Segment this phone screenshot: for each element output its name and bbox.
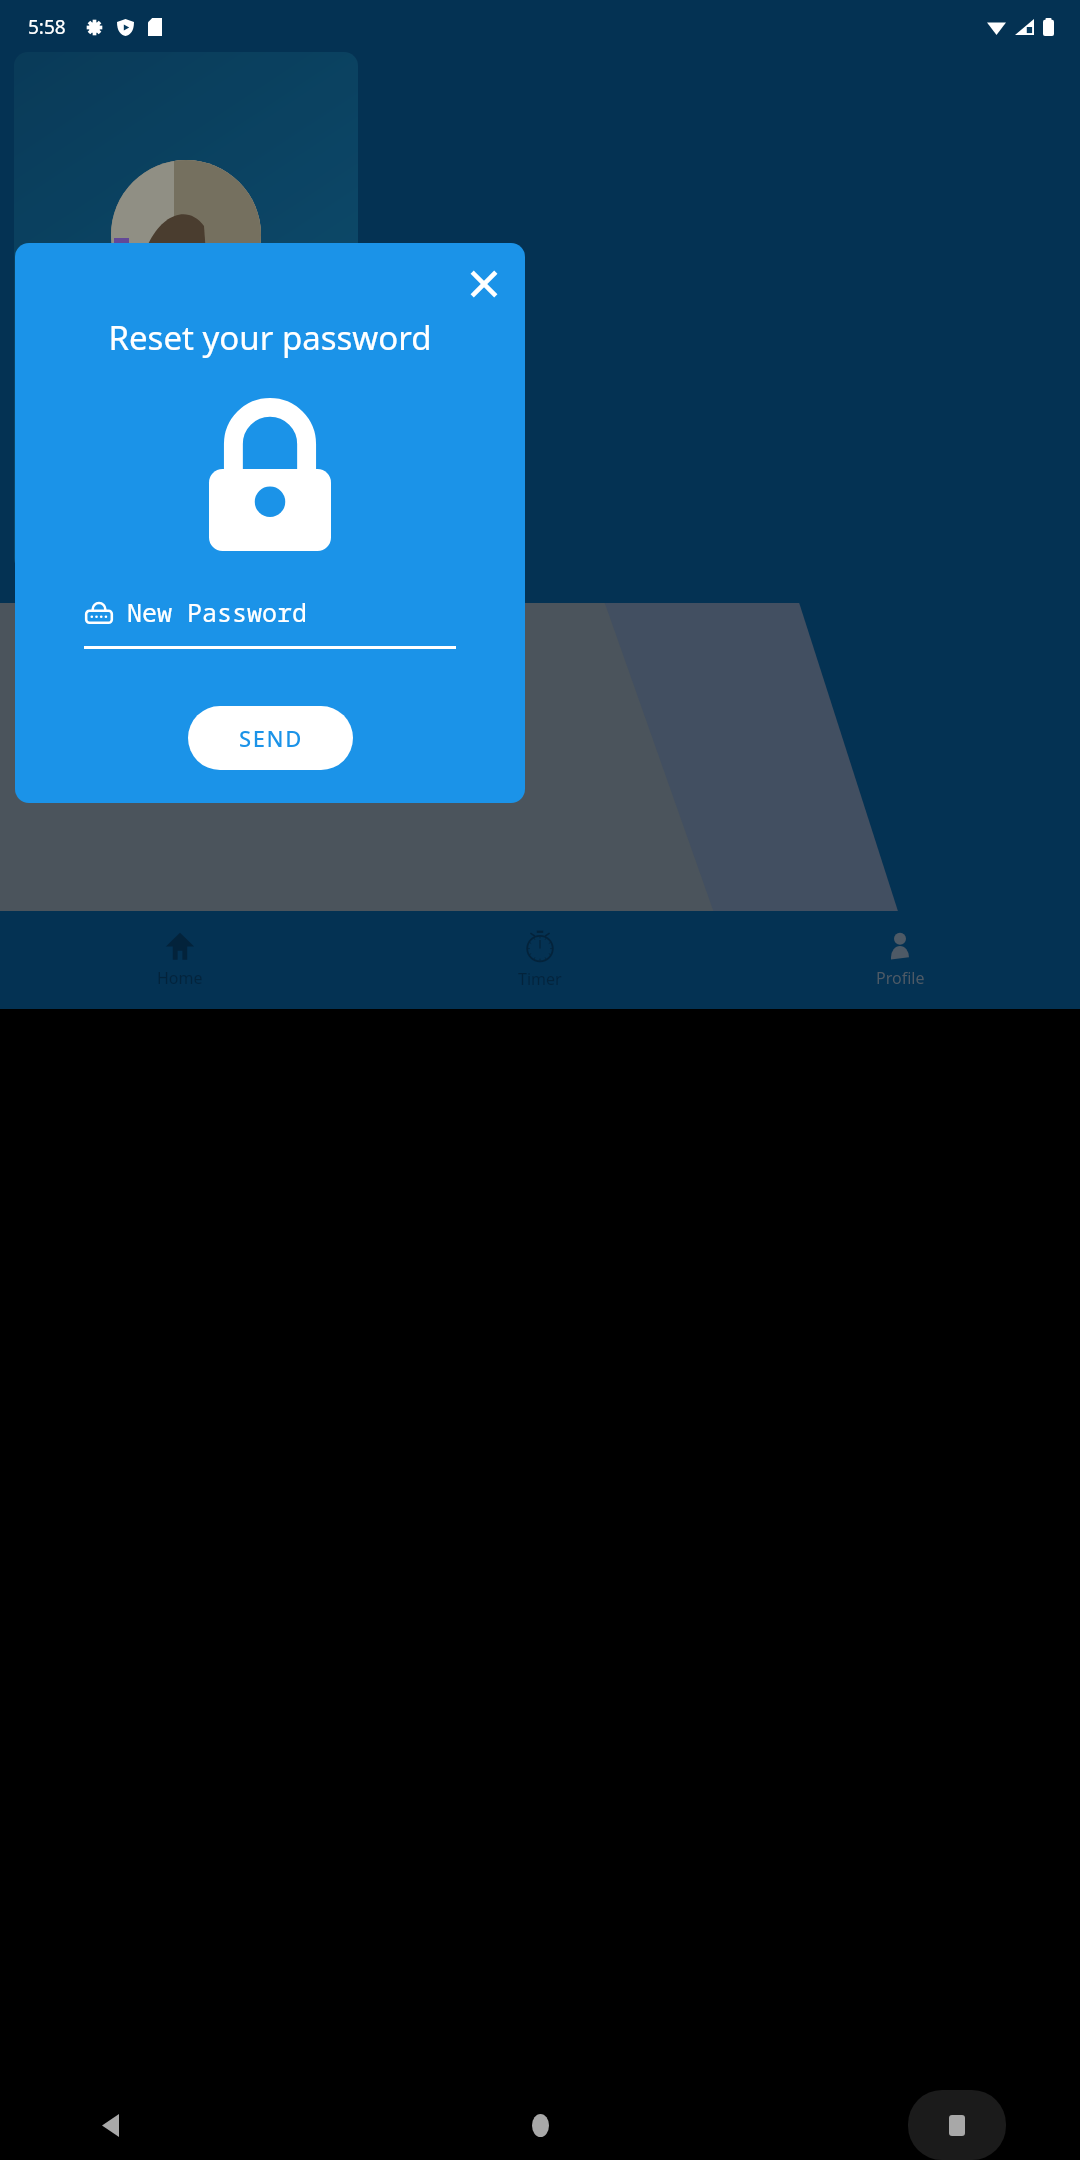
button[interactable]: SEND <box>188 706 353 770</box>
button[interactable]: New Password <box>84 595 456 649</box>
staticText: SEND <box>239 723 303 753</box>
button[interactable]: Profile <box>720 911 1080 1009</box>
button[interactable]: Back <box>90 2105 130 2145</box>
button[interactable] <box>14 52 358 572</box>
staticText: Home <box>157 967 203 989</box>
staticText: Profile <box>876 967 925 989</box>
button[interactable]: Recent apps <box>908 2090 1006 2160</box>
staticText: 5:58 <box>28 14 66 40</box>
staticText: Timer <box>518 968 562 990</box>
staticText: New Password <box>127 595 308 629</box>
staticText: Reset your password <box>108 315 432 360</box>
button[interactable]: Home <box>518 2103 562 2147</box>
button[interactable]: Close <box>456 256 512 312</box>
